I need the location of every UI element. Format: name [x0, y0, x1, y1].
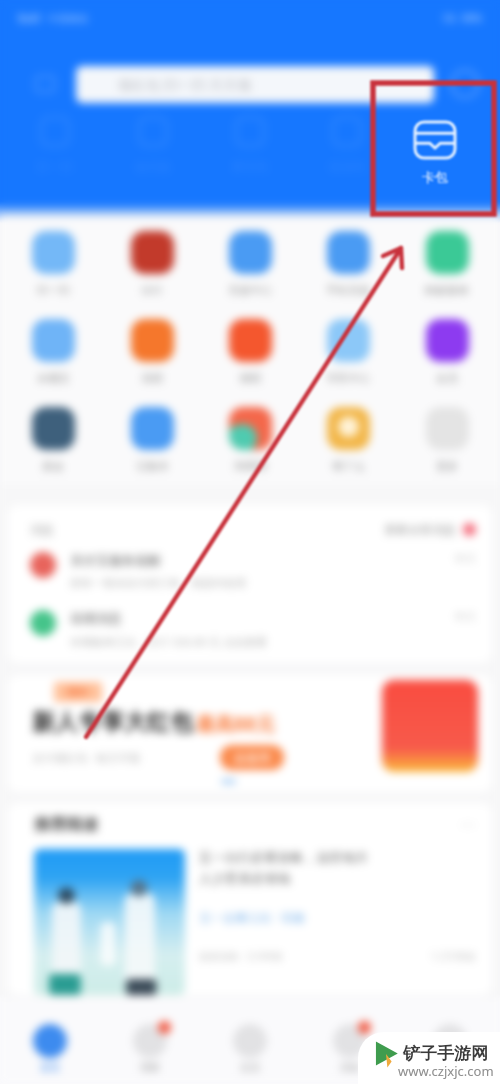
- button[interactable]: Scan: [14, 65, 76, 103]
- button[interactable]: 去使用: [220, 745, 284, 770]
- staticText: 消息: [340, 1061, 360, 1074]
- button[interactable]: 蚂蚁森林: [402, 231, 492, 297]
- staticText: 查看全部消息: [384, 522, 456, 537]
- staticText: 新人专享大红包: [32, 708, 193, 737]
- staticText: 花呗消息: [70, 610, 122, 626]
- staticText: 5G: [443, 11, 456, 25]
- staticText: 去使用: [234, 750, 270, 765]
- button[interactable]: 我的: [400, 1020, 500, 1078]
- button[interactable]: 饿了么: [303, 407, 393, 473]
- button[interactable]: 余额宝: [8, 319, 98, 385]
- button[interactable]: 花呗: [107, 319, 197, 385]
- staticText: 1.2万阅读: [431, 949, 476, 963]
- staticText: 9:41: [18, 10, 42, 26]
- staticText: www.czjxjc.com: [398, 1062, 494, 1080]
- button[interactable]: Profile: [444, 63, 486, 105]
- staticText: 借呗: [239, 371, 261, 385]
- button[interactable]: 更多: [402, 407, 492, 473]
- staticText: 理财: [140, 1061, 160, 1074]
- staticText: 消息: [30, 522, 54, 537]
- staticText: 出行: [141, 283, 163, 297]
- staticText: 蚂蚁森林: [425, 283, 469, 297]
- button[interactable]: 淘票票: [205, 407, 295, 473]
- button[interactable]: 限时: [8, 675, 492, 792]
- staticText: 限时: [67, 685, 89, 699]
- staticText: 88%: [462, 11, 482, 25]
- staticText: 余额宝: [37, 371, 70, 385]
- button[interactable]: 记账本: [107, 407, 197, 473]
- staticText: 本期账单已出，共计 326.00 元 点击查看: [70, 634, 267, 649]
- staticText: 最高88元: [196, 711, 275, 737]
- button[interactable]: 借呗: [205, 319, 295, 385]
- staticText: 铲子手游网: [403, 1043, 488, 1064]
- button[interactable]: [403, 112, 487, 175]
- staticText: 记账本: [136, 459, 169, 473]
- staticText: 淘票票: [234, 459, 267, 473]
- staticText: 我的: [440, 1061, 460, 1074]
- button[interactable]: 领红包 扫一扫 天天领: [76, 66, 434, 103]
- staticText: 五一去哪儿玩 · 话题: [199, 909, 305, 925]
- button[interactable]: 基金: [8, 407, 98, 473]
- staticText: 旅游攻略 · 2小时前: [199, 949, 283, 963]
- staticText: 中国移动: [48, 12, 88, 25]
- staticText: 手机充值: [326, 283, 370, 297]
- staticText: 扫一扫: [37, 283, 70, 297]
- button[interactable]: 扫一扫: [8, 231, 98, 297]
- button[interactable]: 消息: [300, 1020, 400, 1078]
- button[interactable]: 理财: [100, 1020, 200, 1078]
- button[interactable]: 出行: [107, 231, 197, 297]
- staticText: 五一出行必看攻略，这些地方 人少景美还省钱: [199, 849, 368, 887]
- button[interactable]: 首页: [0, 1020, 100, 1078]
- staticText: 支付宝服务提醒: [70, 552, 161, 568]
- staticText: 首页: [40, 1061, 60, 1074]
- button[interactable]: 卡包 Wallet: [393, 120, 477, 185]
- staticText: 更多: [436, 459, 458, 473]
- button[interactable]: 手机充值: [303, 231, 393, 297]
- button[interactable]: 会员: [402, 319, 492, 385]
- button[interactable]: 支付宝服务提醒: [30, 552, 476, 590]
- staticText: 推荐阅读: [34, 815, 98, 835]
- staticText: 生活: [240, 1061, 260, 1074]
- staticText: 支付领红包 · 每天可领: [32, 750, 140, 765]
- button[interactable]: 充值中心: [205, 231, 295, 297]
- button[interactable]: 市民中心: [303, 319, 393, 385]
- staticText: 市民中心: [326, 371, 370, 385]
- staticText: 花呗: [141, 371, 163, 385]
- staticText: 饿了么: [332, 459, 365, 473]
- staticText: 卡包: [422, 169, 448, 185]
- staticText: 领红包 扫一扫 天天领: [118, 75, 252, 94]
- staticText: 充值中心: [228, 283, 272, 297]
- staticText: 会员: [436, 371, 458, 385]
- staticText: 您有一笔待支付的订单，请及时处理: [70, 576, 246, 590]
- button[interactable]: 医保码: [305, 112, 389, 174]
- button[interactable]: 五一出行必看攻略，这些地方 人少景美还省钱: [34, 849, 476, 995]
- button[interactable]: 花呗消息: [30, 610, 476, 649]
- staticText: 基金: [42, 459, 64, 473]
- button[interactable]: 生活: [200, 1020, 300, 1078]
